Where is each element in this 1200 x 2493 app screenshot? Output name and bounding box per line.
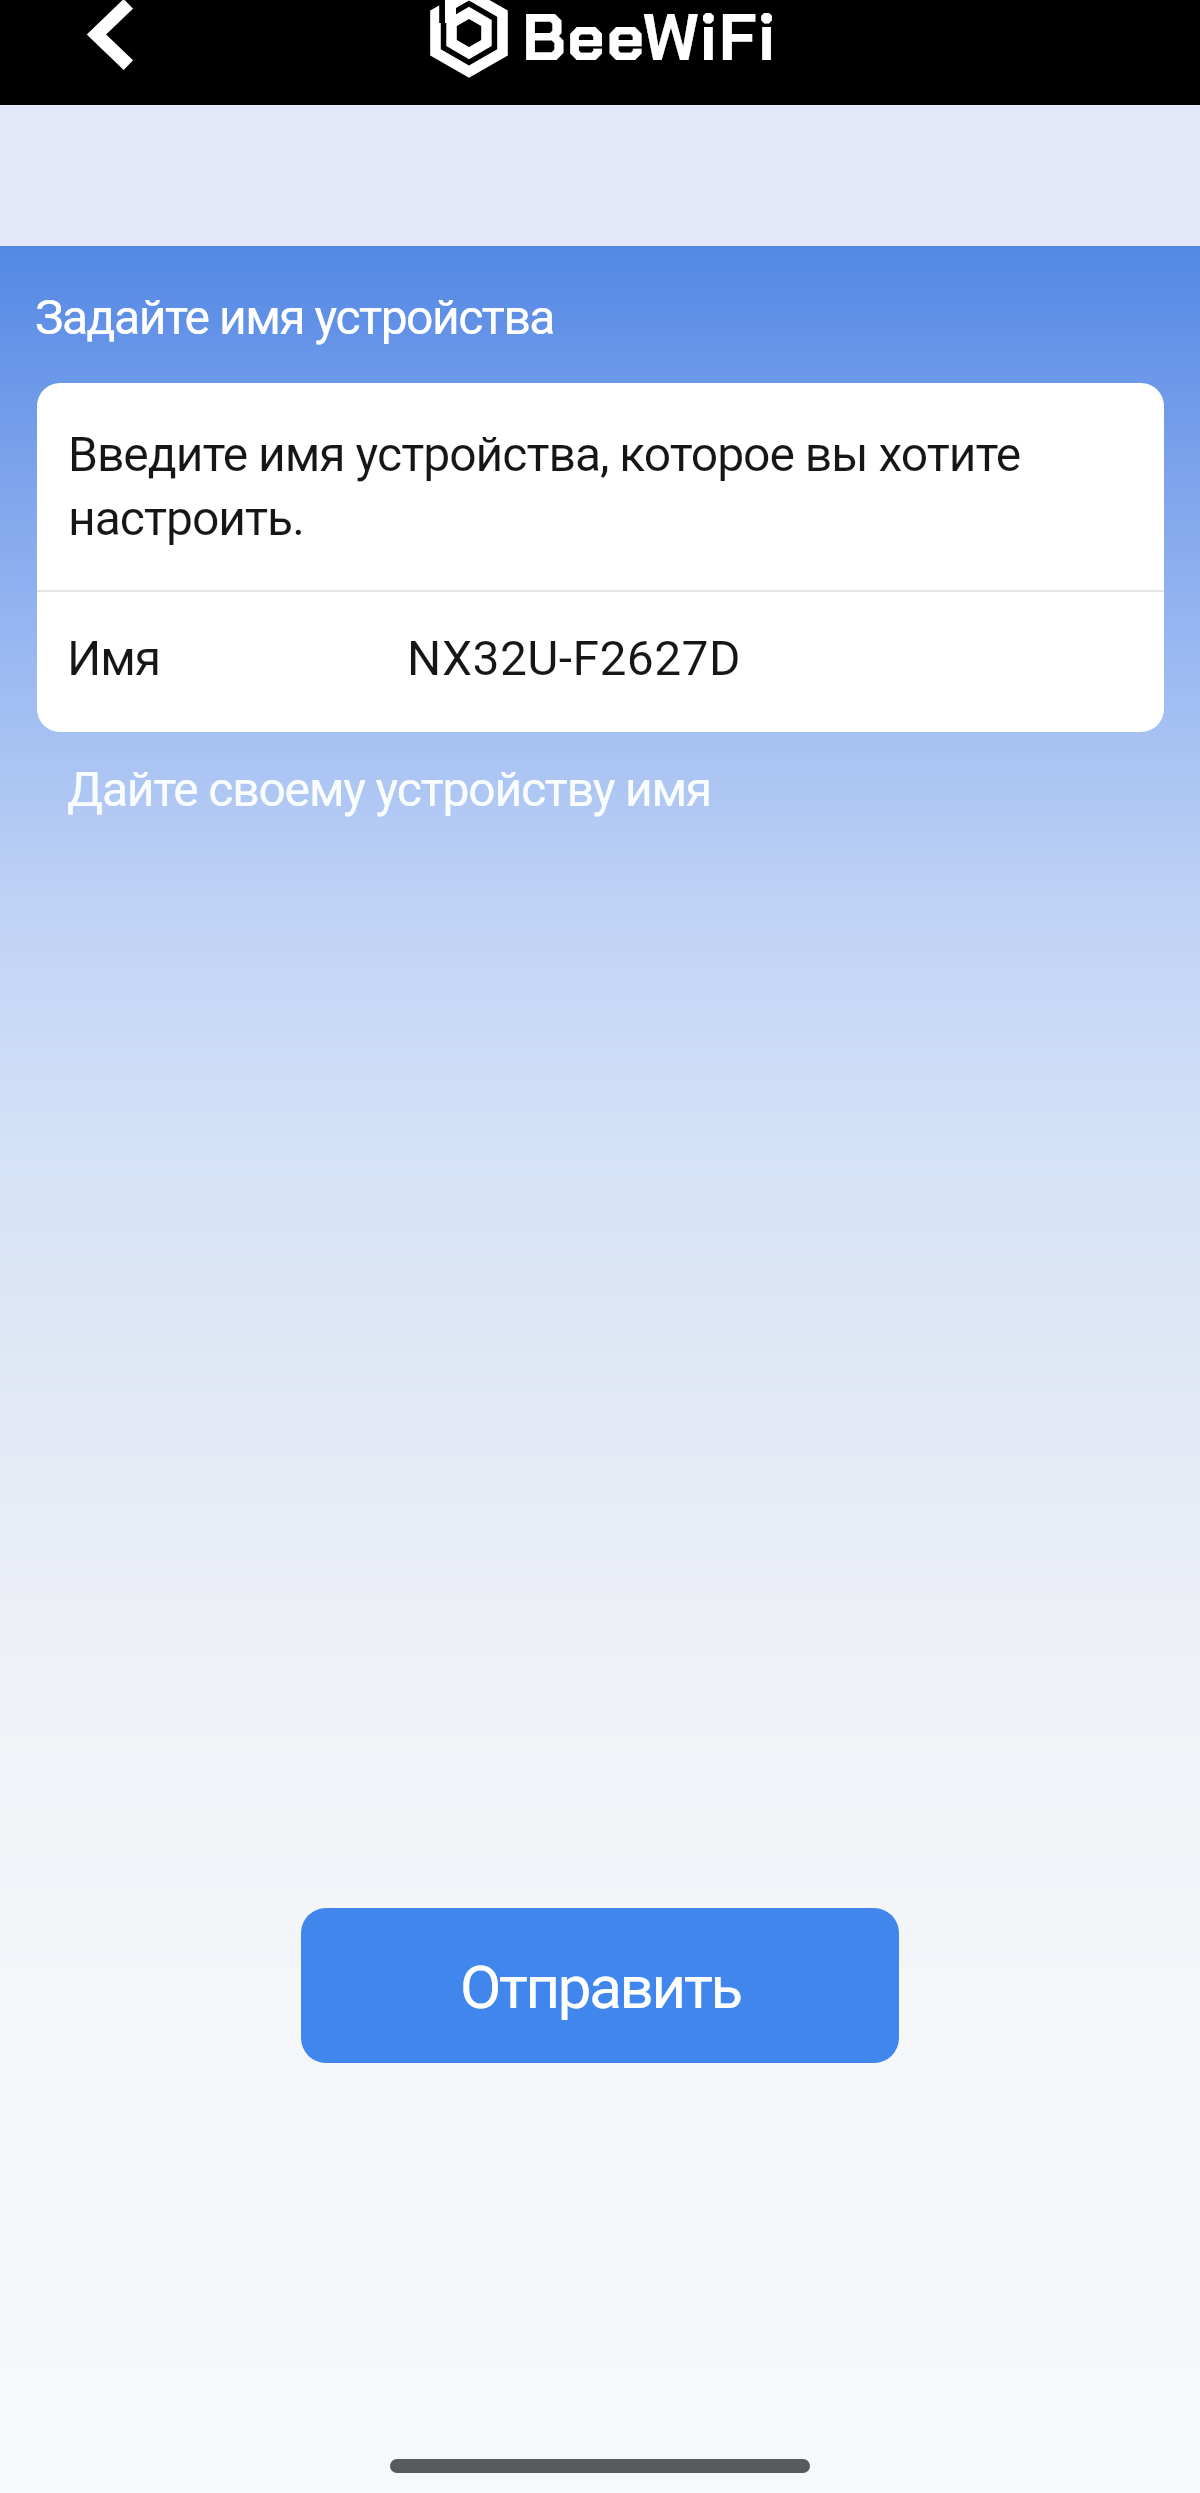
staticText: NX32U-F2627D bbox=[407, 630, 741, 686]
button[interactable]: Back bbox=[30, 0, 180, 105]
staticText: Задайте имя устройства bbox=[35, 289, 554, 345]
button[interactable]: Отправить bbox=[301, 1908, 899, 2063]
staticText: Отправить bbox=[460, 1952, 741, 2022]
staticText: Имя bbox=[67, 630, 161, 686]
button[interactable]: Имя bbox=[37, 592, 1164, 732]
staticText: BeeWiFi bbox=[522, 0, 777, 80]
staticText: Введите имя устройства, которое вы хотит… bbox=[68, 426, 1088, 546]
staticText: Дайте своему устройству имя bbox=[67, 761, 712, 817]
